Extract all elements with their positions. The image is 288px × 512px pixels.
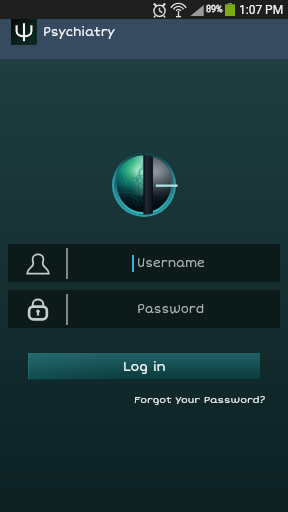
button[interactable]: Forgot Your Password? <box>134 394 288 406</box>
button[interactable]: Username <box>8 244 280 282</box>
other: Password <box>26 297 50 321</box>
staticText: Password <box>137 302 205 317</box>
button[interactable]: Log in <box>28 353 260 380</box>
staticText: 89% <box>206 4 223 15</box>
staticText: 1:07 PM <box>239 3 284 17</box>
staticText: Username <box>137 256 205 271</box>
button[interactable]: Password <box>8 290 280 328</box>
staticText: Log in <box>123 359 166 375</box>
staticText: Psychiatry <box>43 25 115 40</box>
other: Username <box>26 251 50 275</box>
